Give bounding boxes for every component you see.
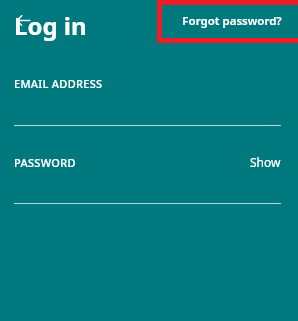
staticText: PASSWORD	[14, 155, 76, 170]
staticText: Show	[250, 154, 281, 170]
button[interactable]: Show	[250, 154, 281, 170]
button[interactable]: Back	[6, 3, 40, 37]
staticText: Log in	[14, 9, 87, 42]
staticText: EMAIL ADDRESS	[14, 76, 103, 91]
button[interactable]: Forgot password?	[162, 5, 298, 38]
staticText: Forgot password?	[182, 13, 282, 29]
